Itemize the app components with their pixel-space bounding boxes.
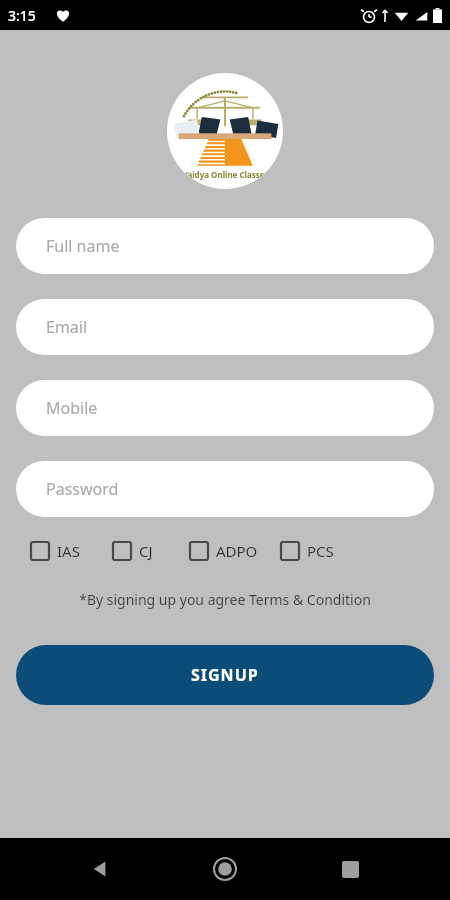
staticText: IAS: [57, 541, 80, 561]
button[interactable]: Mobile: [16, 380, 434, 436]
button[interactable]: Home: [201, 845, 249, 893]
button[interactable]: CJ: [112, 541, 153, 561]
button[interactable]: Email: [16, 299, 434, 355]
staticText: 3:15: [8, 6, 36, 25]
button[interactable]: PCS: [280, 541, 334, 561]
button[interactable]: Password: [16, 461, 434, 517]
staticText: Vaidya Online Classes: [182, 169, 269, 180]
button[interactable]: IAS: [30, 541, 80, 561]
staticText: Mobile: [46, 397, 98, 419]
button[interactable]: ADPO: [189, 541, 258, 561]
button[interactable]: Recents: [326, 845, 374, 893]
button[interactable]: Full name: [16, 218, 434, 274]
button[interactable]: SIGNUP: [16, 645, 434, 705]
staticText: Email: [46, 316, 88, 338]
staticText: ADPO: [216, 541, 258, 561]
staticText: SIGNUP: [191, 664, 259, 686]
staticText: Full name: [46, 235, 120, 257]
button[interactable]: Back: [77, 845, 125, 893]
staticText: PCS: [307, 541, 334, 561]
button[interactable]: Vaidya Online Classes logo: [167, 73, 283, 189]
staticText: *By signing up you agree Terms & Conditi…: [79, 590, 371, 609]
staticText: CJ: [139, 541, 153, 561]
staticText: Password: [46, 478, 119, 500]
